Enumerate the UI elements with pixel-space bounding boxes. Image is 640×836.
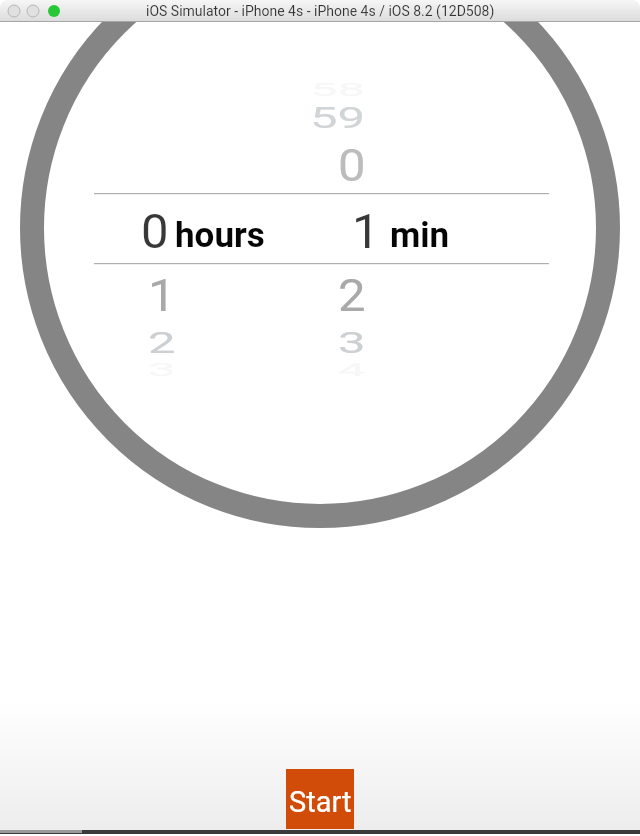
staticText: Start: [289, 785, 352, 819]
staticText: hours: [175, 215, 265, 256]
staticText: 4: [338, 359, 366, 380]
staticText: 2: [338, 271, 366, 322]
staticText: 3: [338, 325, 366, 360]
staticText: iOS Simulator - iPhone 4s - iPhone 4s / …: [146, 3, 495, 19]
staticText: 2: [148, 325, 176, 360]
staticText: 58: [310, 80, 366, 101]
staticText: 0: [338, 141, 366, 192]
staticText: 59: [310, 100, 366, 135]
staticText: 0: [141, 203, 169, 260]
staticText: 3: [148, 359, 176, 380]
staticText: min: [390, 215, 450, 256]
staticText: 1: [352, 203, 380, 260]
staticText: 1: [148, 271, 176, 322]
